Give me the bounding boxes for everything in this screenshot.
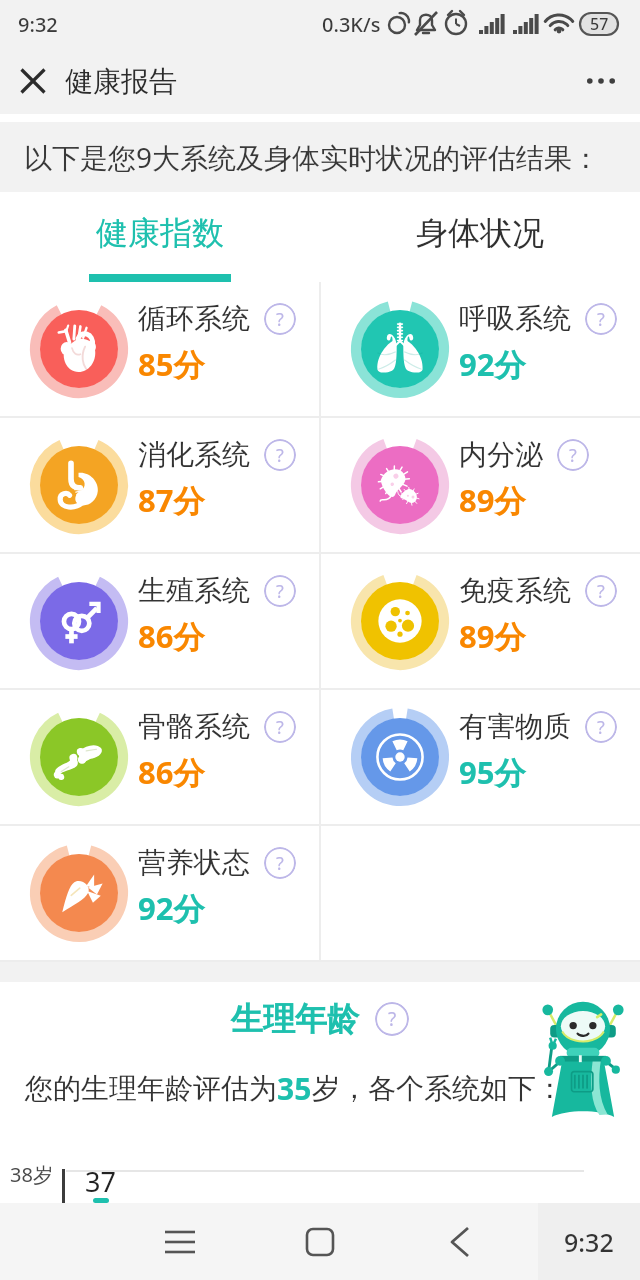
button[interactable]: 营养状态 <box>0 826 319 960</box>
button[interactable]: Help <box>585 303 617 335</box>
button[interactable]: Help <box>264 303 296 335</box>
staticText: ? <box>597 307 605 332</box>
button[interactable]: 有害物质 <box>321 690 640 824</box>
staticText: ? <box>276 443 284 468</box>
button[interactable]: Close <box>9 57 57 105</box>
button[interactable]: 健康指数 <box>0 192 320 282</box>
staticText: 9:32 <box>564 1225 614 1259</box>
button[interactable]: Help <box>264 439 296 471</box>
staticText: 消化系统 <box>138 437 250 472</box>
button[interactable]: Home <box>292 1214 348 1270</box>
staticText: 86分 <box>138 615 205 657</box>
staticText: 生理年龄 <box>231 999 359 1039</box>
button[interactable]: 生殖系统 <box>0 554 319 688</box>
staticText: 57 <box>590 13 609 35</box>
button[interactable]: 呼吸系统 <box>321 282 640 416</box>
staticText: 92分 <box>138 887 205 929</box>
button[interactable]: Help <box>264 847 296 879</box>
staticText: 37 <box>85 1163 116 1200</box>
button[interactable]: 循环系统 <box>0 282 319 416</box>
staticText: 生殖系统 <box>138 573 250 608</box>
staticText: 有害物质 <box>459 709 571 744</box>
button[interactable]: Back <box>432 1214 488 1270</box>
staticText: 89分 <box>459 615 526 657</box>
button[interactable]: 身体状况 <box>320 192 640 282</box>
button[interactable]: Help <box>264 711 296 743</box>
button[interactable]: Help <box>585 711 617 743</box>
staticText: 骨骼系统 <box>138 709 250 744</box>
staticText: 免疫系统 <box>459 573 571 608</box>
staticText: ? <box>569 443 577 468</box>
button[interactable]: Help <box>585 575 617 607</box>
staticText: 循环系统 <box>138 301 250 336</box>
staticText: 呼吸系统 <box>459 301 571 336</box>
button[interactable]: Recents <box>152 1214 208 1270</box>
staticText: 0.3K/s <box>322 11 381 38</box>
button[interactable]: Help <box>375 1002 409 1036</box>
button[interactable]: 消化系统 <box>0 418 319 552</box>
button[interactable]: Help <box>264 575 296 607</box>
staticText: ? <box>276 307 284 332</box>
button[interactable]: 免疫系统 <box>321 554 640 688</box>
staticText: 92分 <box>459 343 526 385</box>
staticText: 健康指数 <box>96 213 224 253</box>
staticText: 以下是您9大系统及身体实时状况的评估结果： <box>24 138 601 176</box>
staticText: ? <box>276 715 284 740</box>
staticText: 89分 <box>459 479 526 521</box>
staticText: ? <box>597 715 605 740</box>
staticText: ? <box>388 1006 397 1032</box>
button[interactable]: Help <box>557 439 589 471</box>
staticText: 35 <box>277 1068 312 1109</box>
staticText: ? <box>276 851 284 876</box>
staticText: 38岁 <box>10 1161 53 1188</box>
staticText: 健康报告 <box>65 64 177 99</box>
staticText: 身体状况 <box>416 213 544 253</box>
staticText: 岁，各个系统如下： <box>312 1071 564 1106</box>
button[interactable]: More options <box>577 57 625 105</box>
staticText: 营养状态 <box>138 845 250 880</box>
staticText: 87分 <box>138 479 205 521</box>
button[interactable]: 内分泌 <box>321 418 640 552</box>
staticText: 您的生理年龄评估为 <box>25 1071 277 1106</box>
staticText: 95分 <box>459 751 526 793</box>
button[interactable]: 骨骼系统 <box>0 690 319 824</box>
staticText: 9:32 <box>18 11 58 38</box>
staticText: 86分 <box>138 751 205 793</box>
staticText: ? <box>276 579 284 604</box>
staticText: ? <box>597 579 605 604</box>
staticText: 内分泌 <box>459 437 543 472</box>
staticText: 85分 <box>138 343 205 385</box>
